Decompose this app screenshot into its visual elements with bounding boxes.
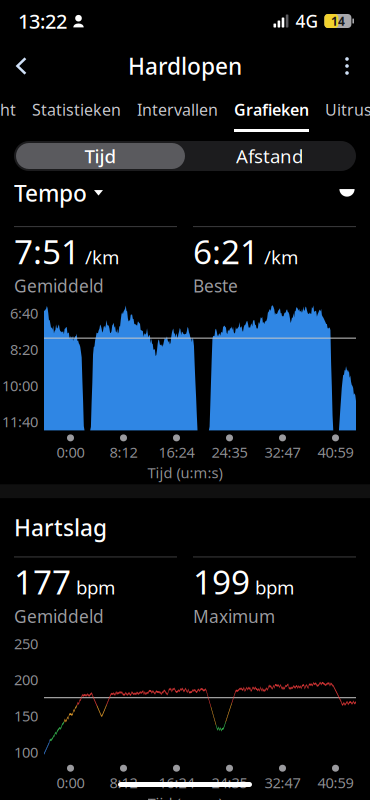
- staticText: 150: [14, 706, 38, 726]
- staticText: Tijd (u:m:s): [147, 793, 222, 800]
- staticText: Hartslag: [14, 512, 107, 542]
- button[interactable]: Tijd: [16, 143, 185, 169]
- staticText: 0:00: [56, 773, 84, 792]
- button[interactable]: Intervallen: [129, 90, 226, 132]
- staticText: 177: [14, 559, 71, 604]
- staticText: Tijd: [84, 144, 116, 168]
- staticText: 32:47: [264, 773, 300, 792]
- staticText: Statistieken: [32, 99, 121, 120]
- staticText: 24:35: [211, 773, 247, 792]
- staticText: 0:00: [56, 442, 84, 462]
- staticText: Gemiddeld: [14, 605, 104, 628]
- staticText: 100: [14, 742, 38, 762]
- staticText: 4G: [295, 9, 318, 32]
- staticText: bpm: [255, 575, 294, 600]
- button[interactable]: Back: [0, 42, 45, 90]
- button[interactable]: Grafieken: [226, 90, 317, 132]
- button[interactable]: Toggle visibility: [338, 188, 356, 198]
- staticText: 16:24: [158, 773, 194, 792]
- staticText: 250: [14, 634, 38, 653]
- staticText: Tijd (u:m:s): [147, 463, 222, 482]
- button[interactable]: ht: [0, 90, 24, 132]
- button[interactable]: Statistieken: [24, 90, 129, 132]
- staticText: Tempo: [14, 178, 87, 208]
- staticText: 32:47: [264, 442, 300, 462]
- staticText: Beste: [193, 274, 238, 297]
- staticText: Grafieken: [234, 99, 309, 120]
- staticText: 13:22: [18, 8, 67, 34]
- staticText: 8:12: [109, 773, 137, 792]
- staticText: 24:35: [211, 442, 247, 462]
- staticText: 199: [193, 559, 250, 604]
- button[interactable]: More options: [322, 42, 370, 90]
- staticText: 14: [331, 13, 345, 29]
- staticText: 8:20: [10, 340, 38, 359]
- staticText: 8:12: [109, 442, 137, 462]
- staticText: bpm: [76, 575, 115, 600]
- staticText: Hardlopen: [128, 51, 242, 81]
- staticText: 6:40: [10, 303, 38, 323]
- button[interactable]: Afstand: [185, 143, 354, 169]
- staticText: Maximum: [193, 605, 275, 628]
- staticText: 6:21: [193, 229, 259, 273]
- button[interactable]: Uitrusting: [317, 90, 370, 132]
- staticText: ht: [0, 99, 16, 120]
- staticText: 16:24: [158, 442, 194, 462]
- staticText: Afstand: [236, 144, 303, 168]
- staticText: 10:00: [2, 376, 38, 395]
- staticText: Intervallen: [137, 99, 218, 120]
- staticText: 40:59: [317, 442, 353, 462]
- staticText: 40:59: [317, 773, 353, 792]
- staticText: /km: [85, 244, 119, 269]
- staticText: 200: [14, 670, 38, 689]
- staticText: Gemiddeld: [14, 274, 104, 297]
- staticText: /km: [264, 244, 298, 269]
- staticText: 11:40: [2, 412, 38, 431]
- staticText: 7:51: [14, 229, 80, 273]
- staticText: Uitrusting: [325, 99, 370, 120]
